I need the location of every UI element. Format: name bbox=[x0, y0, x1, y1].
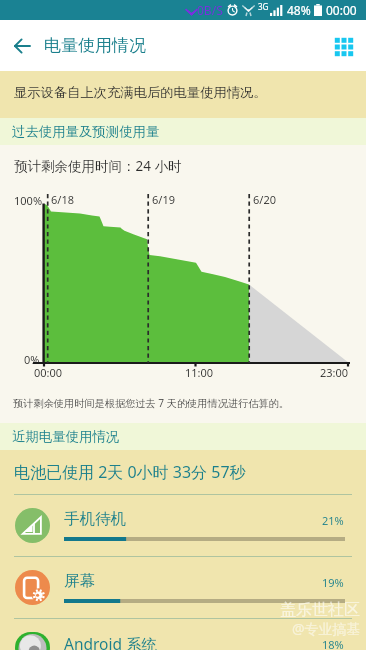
staticText: 显示设备自上次充满电后的电量使用情况。 bbox=[14, 84, 267, 101]
staticText: 0B/S bbox=[197, 2, 223, 18]
staticText: 0% bbox=[24, 352, 40, 367]
staticText: 盖乐世社区 bbox=[280, 600, 360, 620]
staticText: Android 系统 bbox=[64, 633, 158, 650]
staticText: 11:00 bbox=[185, 365, 214, 380]
staticText: 19% bbox=[322, 575, 344, 590]
staticText: 6/18 bbox=[51, 192, 74, 207]
button[interactable]: 屏幕 bbox=[0, 556, 366, 618]
staticText: 3G bbox=[258, 1, 269, 12]
button[interactable]: Apps bbox=[330, 32, 358, 60]
staticText: 00:00 bbox=[34, 365, 63, 380]
staticText: @专业搞基 bbox=[292, 619, 361, 638]
staticText: 48% bbox=[287, 2, 311, 18]
staticText: 18% bbox=[322, 637, 344, 650]
button[interactable]: Back bbox=[7, 32, 35, 60]
staticText: 6/20 bbox=[253, 192, 276, 207]
button[interactable]: Android 系统 bbox=[0, 618, 366, 650]
staticText: 21% bbox=[322, 513, 344, 528]
staticText: 屏幕 bbox=[64, 571, 95, 591]
staticText: 100% bbox=[14, 193, 43, 208]
staticText: 23:00 bbox=[320, 365, 349, 380]
staticText: 预计剩余使用时间是根据您过去 7 天的使用情况进行估算的。 bbox=[13, 396, 289, 410]
staticText: 6/19 bbox=[152, 192, 175, 207]
staticText: 手机待机 bbox=[64, 509, 126, 529]
staticText: 过去使用量及预测使用量 bbox=[12, 123, 160, 140]
staticText: 00:00 bbox=[326, 2, 357, 18]
button[interactable]: 手机待机 bbox=[0, 494, 366, 556]
staticText: 预计剩余使用时间：24 小时 bbox=[14, 157, 182, 175]
staticText: 近期电量使用情况 bbox=[12, 428, 120, 445]
staticText: 电池已使用 2天 0小时 33分 57秒 bbox=[14, 461, 246, 483]
staticText: 电量使用情况 bbox=[44, 35, 146, 56]
